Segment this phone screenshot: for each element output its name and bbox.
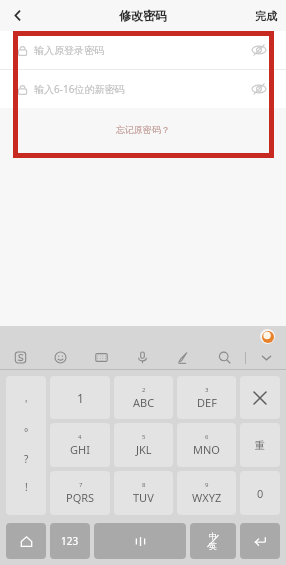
staticText: 2 (142, 386, 146, 394)
staticText: 0 (257, 486, 264, 501)
button[interactable]: ' (6, 376, 46, 515)
button[interactable]: 主页 (6, 523, 46, 559)
button[interactable]: 输入原登录密码 (0, 31, 286, 69)
button[interactable]: 重 (240, 423, 280, 467)
button[interactable]: 3 (177, 376, 236, 419)
staticText: ? (24, 452, 29, 466)
button[interactable]: 显示新密码 (249, 79, 269, 99)
staticText: 输入6-16位的新密码 (34, 82, 125, 96)
staticText: JKL (136, 442, 152, 457)
staticText: 英 (209, 541, 217, 551)
button[interactable]: 9 (177, 471, 236, 515)
staticText: MNO (193, 442, 220, 457)
staticText: 3 (205, 386, 209, 394)
button[interactable]: 2 (114, 376, 173, 419)
button[interactable]: 5 (114, 423, 173, 467)
staticText: WXYZ (192, 490, 222, 505)
button[interactable]: 123 (50, 523, 90, 559)
staticText: TUV (133, 490, 154, 505)
button[interactable]: 回车 (240, 523, 280, 559)
button[interactable]: 输入法 (0, 346, 40, 369)
staticText: 修改密码 (119, 8, 167, 23)
staticText: 输入原登录密码 (34, 44, 104, 57)
button[interactable]: 显示原密码 (249, 40, 269, 60)
staticText: 9 (205, 481, 209, 489)
button[interactable]: 1 (50, 376, 110, 419)
button[interactable]: 完成 (255, 9, 277, 23)
staticText: GHI (70, 442, 90, 457)
button[interactable]: 语音输入 (122, 346, 163, 369)
button[interactable]: 0 (240, 471, 280, 515)
staticText: 8 (142, 481, 146, 489)
staticText: 6 (205, 433, 209, 441)
staticText: ! (25, 480, 28, 494)
button[interactable]: 8 (114, 471, 173, 515)
button[interactable]: 键盘 (81, 346, 122, 369)
button[interactable]: 返回 (0, 0, 34, 31)
button[interactable]: 4 (50, 423, 110, 467)
staticText: 重 (255, 439, 265, 452)
button[interactable]: 中英文切换 (190, 523, 236, 559)
staticText: 完成 (255, 9, 277, 23)
staticText: 中 (209, 531, 217, 541)
button[interactable]: 表情 (40, 346, 81, 369)
staticText: 7 (79, 481, 83, 489)
staticText: 1 (77, 390, 84, 406)
button[interactable]: 忘记原密码？ (0, 124, 286, 135)
button[interactable]: 搜索 (204, 346, 245, 369)
button[interactable]: 皮肤 (260, 329, 275, 344)
button[interactable]: 6 (177, 423, 236, 467)
staticText: ' (25, 397, 28, 411)
staticText: ° (24, 425, 29, 439)
staticText: ABC (133, 395, 155, 410)
staticText: 123 (61, 534, 79, 548)
button[interactable]: 输入6-16位的新密码 (0, 70, 286, 108)
staticText: DEF (197, 395, 217, 410)
staticText: PQRS (66, 490, 95, 505)
staticText: 5 (142, 433, 146, 441)
button[interactable]: 7 (50, 471, 110, 515)
button[interactable]: 手写 (163, 346, 204, 369)
button[interactable]: 收起键盘 (246, 346, 286, 369)
button[interactable]: 删除 (240, 376, 280, 419)
staticText: 4 (78, 433, 82, 441)
button[interactable]: 空格 (94, 523, 186, 559)
